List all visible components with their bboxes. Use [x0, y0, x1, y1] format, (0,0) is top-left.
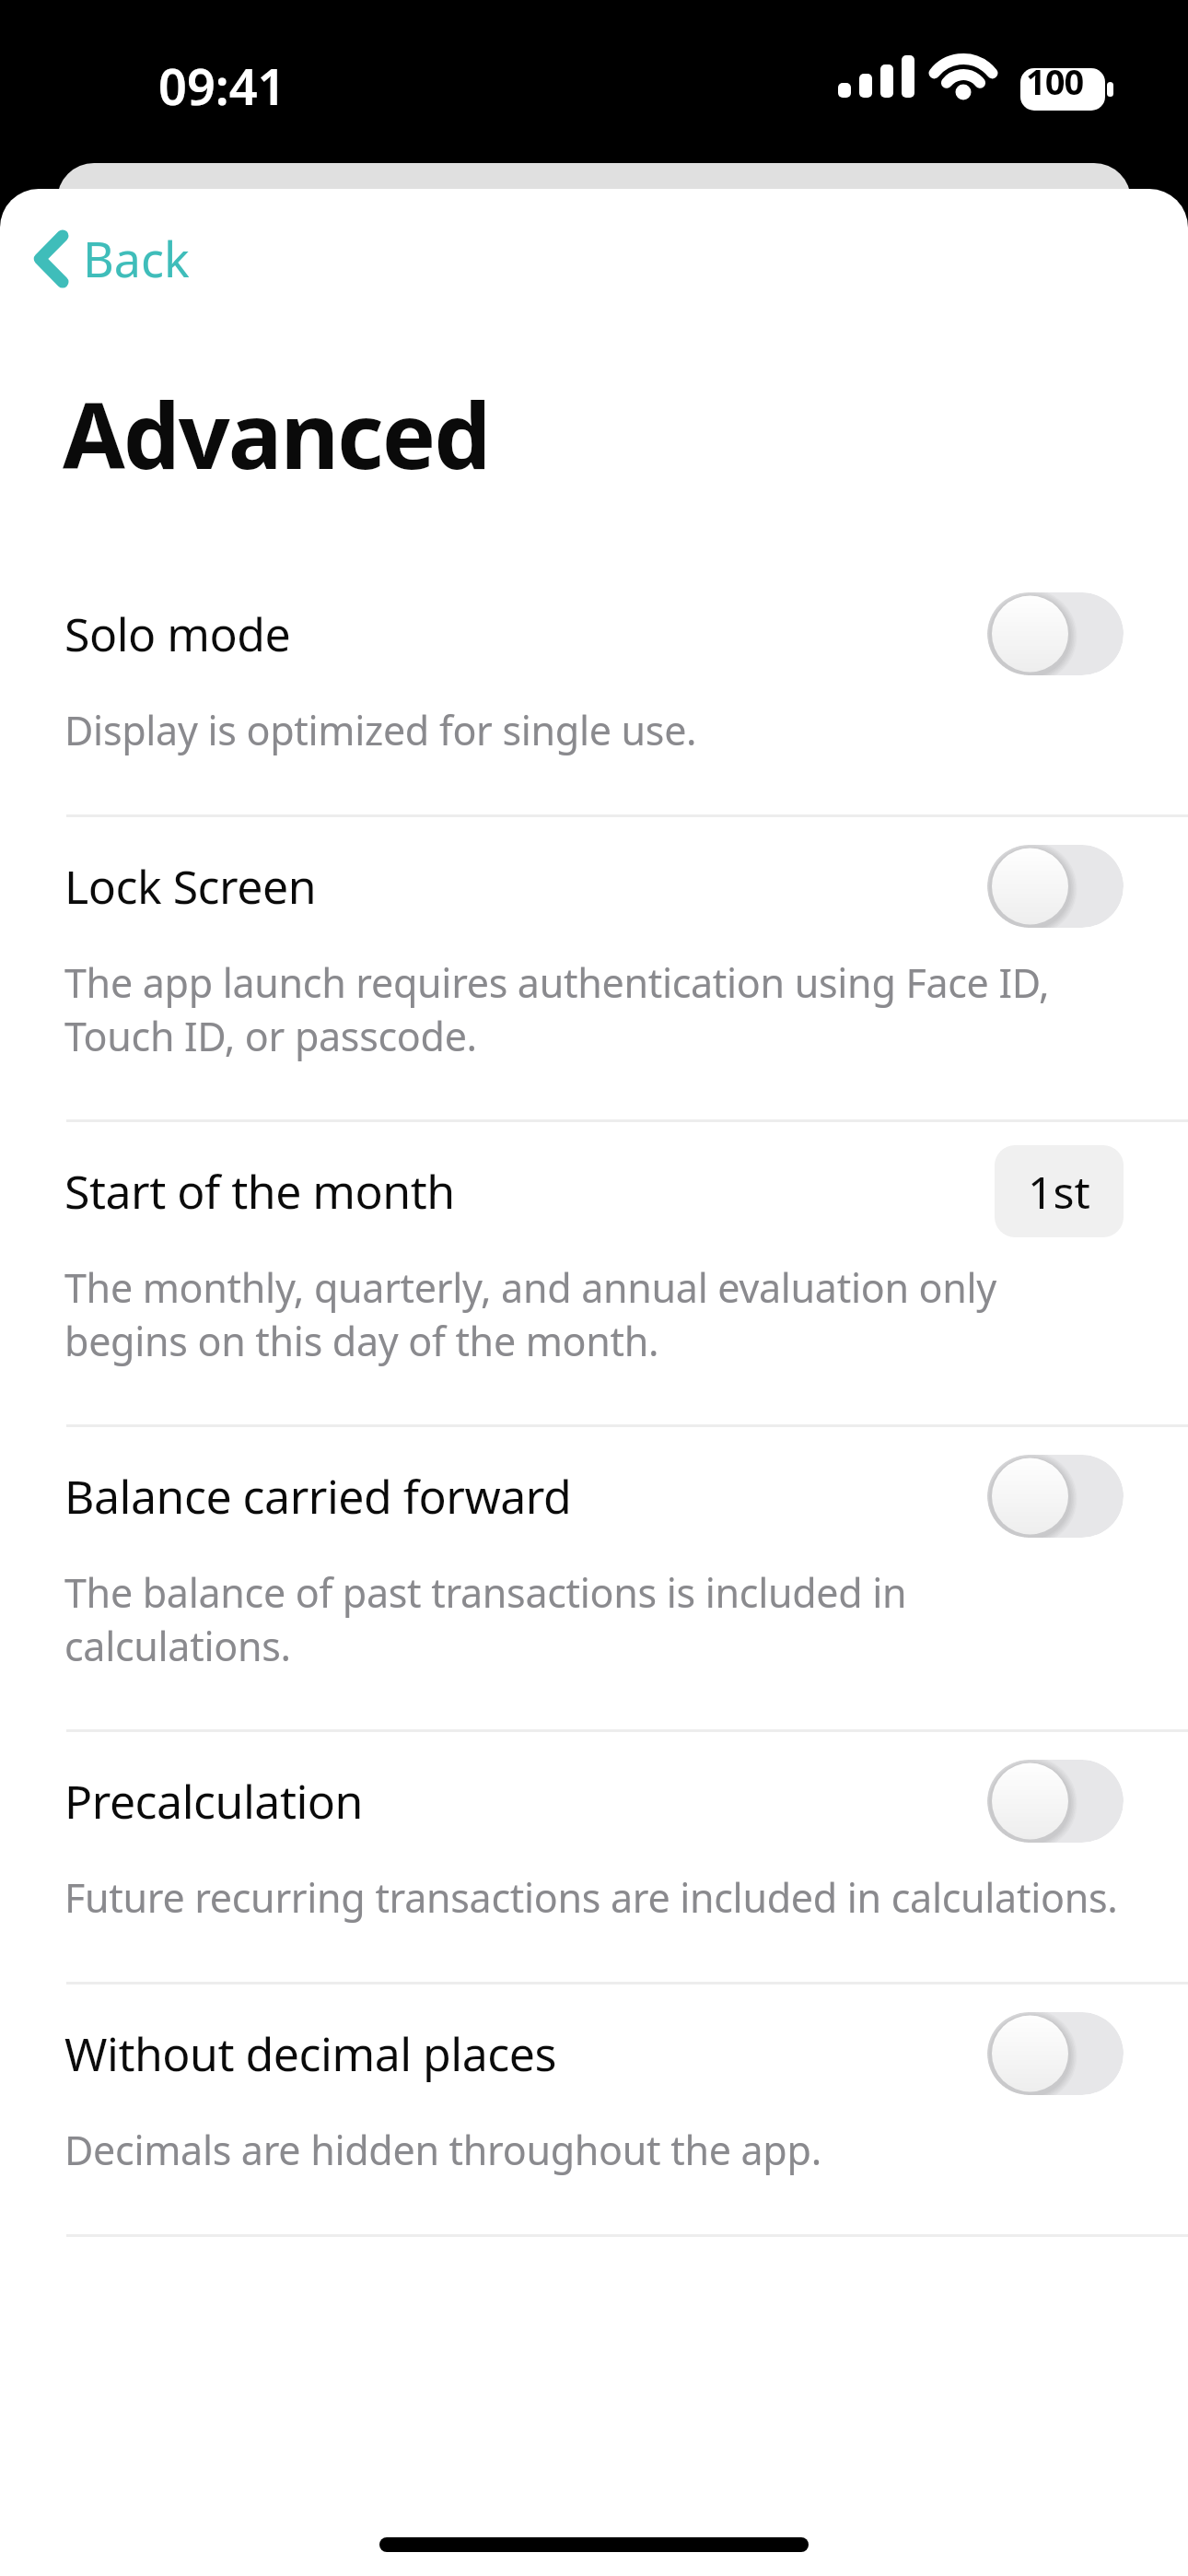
button[interactable]: Without decimal places: [0, 1985, 1188, 2237]
staticText: Without decimal places: [64, 2022, 556, 2085]
button[interactable]: Toggle: [987, 845, 1124, 928]
staticText: 100: [1026, 57, 1084, 105]
button[interactable]: Toggle: [987, 592, 1124, 675]
staticText: Start of the month: [64, 1160, 455, 1223]
staticText: Solo mode: [64, 603, 291, 665]
staticText: The balance of past transactions is incl…: [64, 1565, 1122, 1672]
button[interactable]: Toggle: [987, 2012, 1124, 2095]
staticText: 1st: [1028, 1162, 1090, 1222]
button[interactable]: Balance carried forward: [0, 1427, 1188, 1732]
staticText: Decimals are hidden throughout the app.: [64, 2123, 821, 2177]
button[interactable]: Solo mode: [0, 565, 1188, 817]
staticText: Lock Screen: [64, 855, 317, 918]
staticText: Precalculation: [64, 1770, 363, 1832]
button[interactable]: Lock Screen: [0, 817, 1188, 1122]
button[interactable]: Toggle: [987, 1760, 1124, 1843]
staticText: Display is optimized for single use.: [64, 703, 697, 757]
button[interactable]: Toggle: [987, 1455, 1124, 1538]
staticText: The app launch requires authentication u…: [64, 955, 1122, 1062]
staticText: The monthly, quarterly, and annual evalu…: [64, 1260, 1122, 1367]
staticText: Balance carried forward: [64, 1465, 572, 1528]
button[interactable]: Start of the month: [0, 1122, 1188, 1427]
staticText: Advanced: [63, 372, 490, 495]
button[interactable]: Back: [20, 217, 203, 300]
button[interactable]: Precalculation: [0, 1732, 1188, 1985]
staticText: Back: [83, 226, 190, 291]
staticText: Future recurring transactions are includ…: [64, 1870, 1118, 1925]
staticText: 09:41: [158, 52, 286, 120]
button[interactable]: 1st: [995, 1145, 1124, 1237]
